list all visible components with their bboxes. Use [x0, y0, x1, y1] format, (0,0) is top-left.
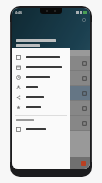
button[interactable]: Toggle alarm: [12, 116, 90, 130]
button[interactable]: [12, 102, 70, 112]
button[interactable]: Toggle alarm: [12, 101, 90, 115]
button[interactable]: [12, 92, 70, 102]
button[interactable]: Toggle alarm: [82, 76, 87, 81]
button[interactable]: Toggle alarm: [12, 56, 90, 70]
button[interactable]: Toggle alarm: [82, 61, 87, 66]
staticText: 4:46: [15, 10, 22, 15]
button[interactable]: [12, 72, 70, 82]
button[interactable]: Toggle alarm: [82, 106, 87, 111]
button[interactable]: [12, 82, 70, 92]
button[interactable]: Toggle alarm: [82, 121, 87, 126]
button[interactable]: Add alarm: [81, 161, 86, 166]
button[interactable]: [12, 62, 70, 72]
button[interactable]: Toggle alarm: [12, 86, 90, 100]
button[interactable]: Toggle alarm: [82, 91, 87, 96]
button[interactable]: [12, 52, 70, 62]
button[interactable]: [12, 124, 70, 134]
button[interactable]: Toggle alarm: [12, 71, 90, 85]
button[interactable]: More options: [81, 17, 87, 23]
